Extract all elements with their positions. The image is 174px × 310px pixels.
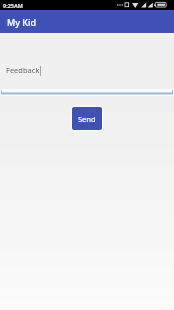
staticText: Feedback [6, 65, 40, 75]
staticText: Send [78, 114, 96, 124]
staticText: My Kid [7, 16, 37, 28]
staticText: 9:25AM [3, 2, 23, 9]
button[interactable]: Feedback text field [0, 60, 174, 94]
button[interactable]: Send [72, 107, 102, 130]
